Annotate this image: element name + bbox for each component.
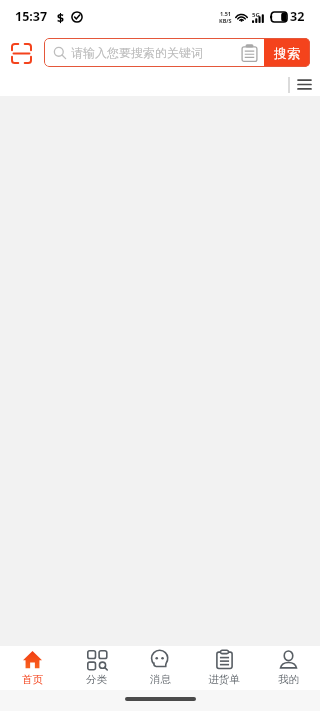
staticText: 进货单 <box>208 673 240 686</box>
staticText: $ <box>57 9 64 25</box>
staticText: 请输入您要搜索的关键词 <box>71 45 203 60</box>
button[interactable]: 进货单 <box>192 646 256 690</box>
button[interactable]: Scan <box>5 37 37 69</box>
staticText: 5G <box>252 11 260 19</box>
button[interactable]: 分类 <box>64 646 128 690</box>
button[interactable]: Paste <box>234 38 264 67</box>
button[interactable]: 首页 <box>0 646 64 690</box>
button[interactable]: Menu <box>292 73 316 96</box>
staticText: 1.51 <box>220 10 231 17</box>
staticText: 分类 <box>86 673 107 686</box>
button[interactable]: 请输入您要搜索的关键词 <box>44 38 234 67</box>
staticText: 首页 <box>22 673 43 686</box>
staticText: KB/S <box>219 17 232 24</box>
staticText: 搜索 <box>274 45 300 61</box>
staticText: 15:37 <box>15 8 48 25</box>
staticText: 消息 <box>150 673 171 686</box>
staticText: 我的 <box>278 673 299 686</box>
button[interactable]: 消息 <box>128 646 192 690</box>
button[interactable]: 我的 <box>256 646 320 690</box>
button[interactable]: 搜索 <box>264 38 310 67</box>
staticText: 32 <box>290 8 305 25</box>
